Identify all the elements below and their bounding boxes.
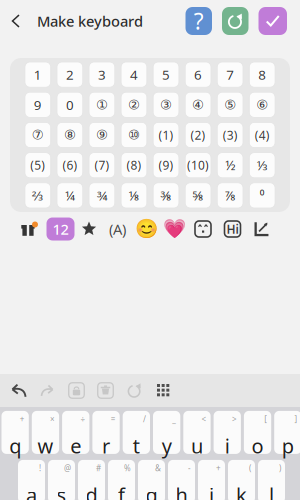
button[interactable]: ×: [32, 416, 59, 459]
button[interactable]: 1: [25, 62, 51, 87]
button[interactable]: ⑤: [217, 92, 243, 117]
button[interactable]: (3): [217, 122, 243, 148]
button[interactable]: ⁰: [249, 183, 275, 208]
button[interactable]: 6: [185, 62, 211, 87]
staticText: 6: [194, 66, 202, 83]
button[interactable]: &: [138, 465, 165, 500]
button[interactable]: ②: [121, 92, 147, 117]
button[interactable]: /: [123, 416, 150, 459]
staticText: (10): [187, 157, 209, 173]
button[interactable]: Undo: [4, 375, 33, 405]
button[interactable]: 5: [153, 62, 179, 87]
button[interactable]: 8: [249, 62, 275, 87]
button[interactable]: (4): [249, 122, 275, 148]
staticText: %: [124, 463, 131, 473]
button[interactable]: ③: [153, 92, 179, 117]
staticText: 💗: [163, 218, 186, 240]
button[interactable]: #: [78, 465, 105, 500]
button[interactable]: @: [48, 465, 75, 500]
button[interactable]: (8): [121, 153, 147, 178]
button[interactable]: (6): [57, 153, 83, 178]
button[interactable]: Text: [218, 214, 247, 244]
button[interactable]: Lock: [62, 375, 91, 405]
staticText: ⅛: [128, 186, 139, 204]
button[interactable]: [: [244, 416, 271, 459]
staticText: e: [70, 432, 81, 459]
staticText: +: [20, 414, 25, 424]
button[interactable]: 0: [57, 92, 83, 117]
staticText: -: [188, 463, 191, 473]
staticText: a: [26, 481, 37, 500]
staticText: ⁰: [260, 186, 265, 204]
button[interactable]: ⑨: [89, 122, 115, 148]
staticText: ①: [96, 97, 108, 112]
button[interactable]: Letters: [103, 214, 132, 244]
button[interactable]: ⑩: [121, 122, 147, 148]
button[interactable]: ①: [89, 92, 115, 117]
button[interactable]: +: [1, 416, 29, 459]
staticText: ③: [160, 97, 172, 112]
button[interactable]: (2): [185, 122, 211, 148]
button[interactable]: (9): [153, 153, 179, 178]
button[interactable]: Kaomoji: [188, 214, 218, 244]
button[interactable]: ]: [274, 416, 300, 459]
button[interactable]: ⑥: [249, 92, 275, 117]
button[interactable]: (: [228, 465, 255, 500]
button[interactable]: ÷: [62, 416, 89, 459]
staticText: (2): [191, 127, 206, 143]
button[interactable]: ⑦: [25, 122, 51, 148]
button[interactable]: Emoji: [132, 214, 161, 244]
button[interactable]: ½: [217, 153, 243, 178]
button[interactable]: <: [183, 416, 211, 459]
button[interactable]: 7: [217, 62, 243, 87]
button[interactable]: 4: [121, 62, 147, 87]
staticText: ⑨: [96, 127, 108, 142]
button[interactable]: >: [214, 416, 241, 459]
staticText: #: [96, 463, 101, 473]
staticText: r: [102, 432, 110, 459]
button[interactable]: ¾: [89, 183, 115, 208]
button[interactable]: Redo: [33, 375, 62, 405]
button[interactable]: Resize: [247, 214, 277, 244]
button[interactable]: Gifts: [10, 214, 46, 244]
button[interactable]: Help: [185, 7, 212, 35]
staticText: y: [162, 432, 172, 459]
button[interactable]: ⅞: [217, 183, 243, 208]
button[interactable]: -: [168, 465, 195, 500]
button[interactable]: =: [92, 416, 120, 459]
button[interactable]: Back: [0, 0, 32, 42]
button[interactable]: ⅜: [153, 183, 179, 208]
button[interactable]: (10): [185, 153, 211, 178]
button[interactable]: _: [153, 416, 180, 459]
button[interactable]: (1): [153, 122, 179, 148]
staticText: ⅔: [32, 186, 44, 204]
button[interactable]: ⑧: [57, 122, 83, 148]
button[interactable]: ¼: [57, 183, 83, 208]
button[interactable]: (5): [25, 153, 51, 178]
button[interactable]: +: [198, 465, 225, 500]
button[interactable]: Favorites: [75, 214, 103, 244]
button[interactable]: Numbers: [46, 214, 75, 244]
button[interactable]: Refresh: [120, 375, 149, 405]
button[interactable]: 2: [57, 62, 83, 87]
button[interactable]: ④: [185, 92, 211, 117]
button[interactable]: ⅓: [249, 153, 275, 178]
button[interactable]: ): [258, 465, 285, 500]
button[interactable]: ⅛: [121, 183, 147, 208]
staticText: ¾: [97, 186, 107, 204]
button[interactable]: 9: [25, 92, 51, 117]
button[interactable]: Hearts: [161, 214, 188, 244]
staticText: 😊: [135, 218, 158, 240]
button[interactable]: %: [108, 465, 135, 500]
button[interactable]: !: [18, 465, 45, 500]
button[interactable]: ⅝: [185, 183, 211, 208]
button[interactable]: Delete: [91, 375, 120, 405]
button[interactable]: 3: [89, 62, 115, 87]
button[interactable]: (7): [89, 153, 115, 178]
button[interactable]: Keyboard layout: [149, 375, 178, 405]
staticText: (3): [223, 127, 238, 143]
button[interactable]: ⅔: [25, 183, 51, 208]
button[interactable]: Done: [258, 7, 287, 35]
button[interactable]: Reset: [222, 7, 248, 35]
staticText: <: [202, 414, 207, 424]
